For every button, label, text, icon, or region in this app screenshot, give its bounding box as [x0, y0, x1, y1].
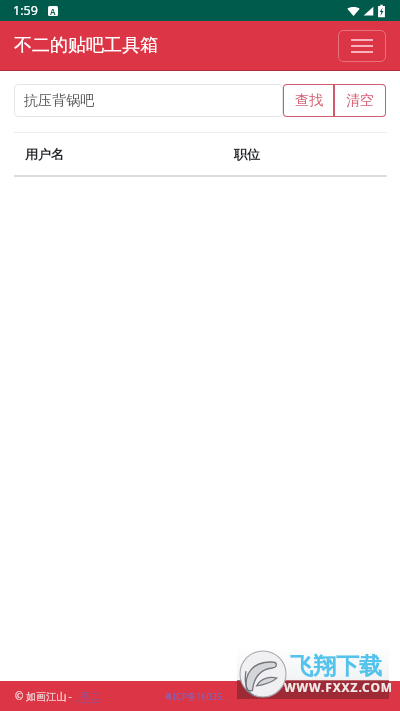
staticText: 抗压背锅吧 — [24, 92, 94, 110]
button[interactable]: 清空 — [334, 84, 386, 117]
staticText: A — [50, 6, 56, 16]
button[interactable]: Menu — [338, 30, 386, 62]
staticText: 1:59 — [13, 2, 38, 19]
staticText: 飞翔下载 — [290, 652, 382, 681]
staticText: © 如画江山 - — [15, 689, 75, 703]
staticText: 查找 — [295, 92, 323, 110]
staticText: 用户名 — [25, 146, 234, 162]
button[interactable]: 不二 — [75, 689, 101, 703]
staticText: 清空 — [346, 92, 374, 110]
staticText: 不二的贴吧工具箱 — [14, 34, 158, 57]
staticText: WWW.FXXZ.COM — [284, 679, 394, 695]
staticText: 粤ICP备16035... — [164, 690, 230, 702]
staticText: 职位 — [234, 146, 260, 162]
button[interactable]: 抗压背锅吧 — [14, 84, 283, 117]
button[interactable]: 查找 — [283, 84, 334, 117]
button[interactable]: 粤ICP备16035... — [164, 690, 230, 702]
staticText: 不二 — [75, 689, 101, 703]
